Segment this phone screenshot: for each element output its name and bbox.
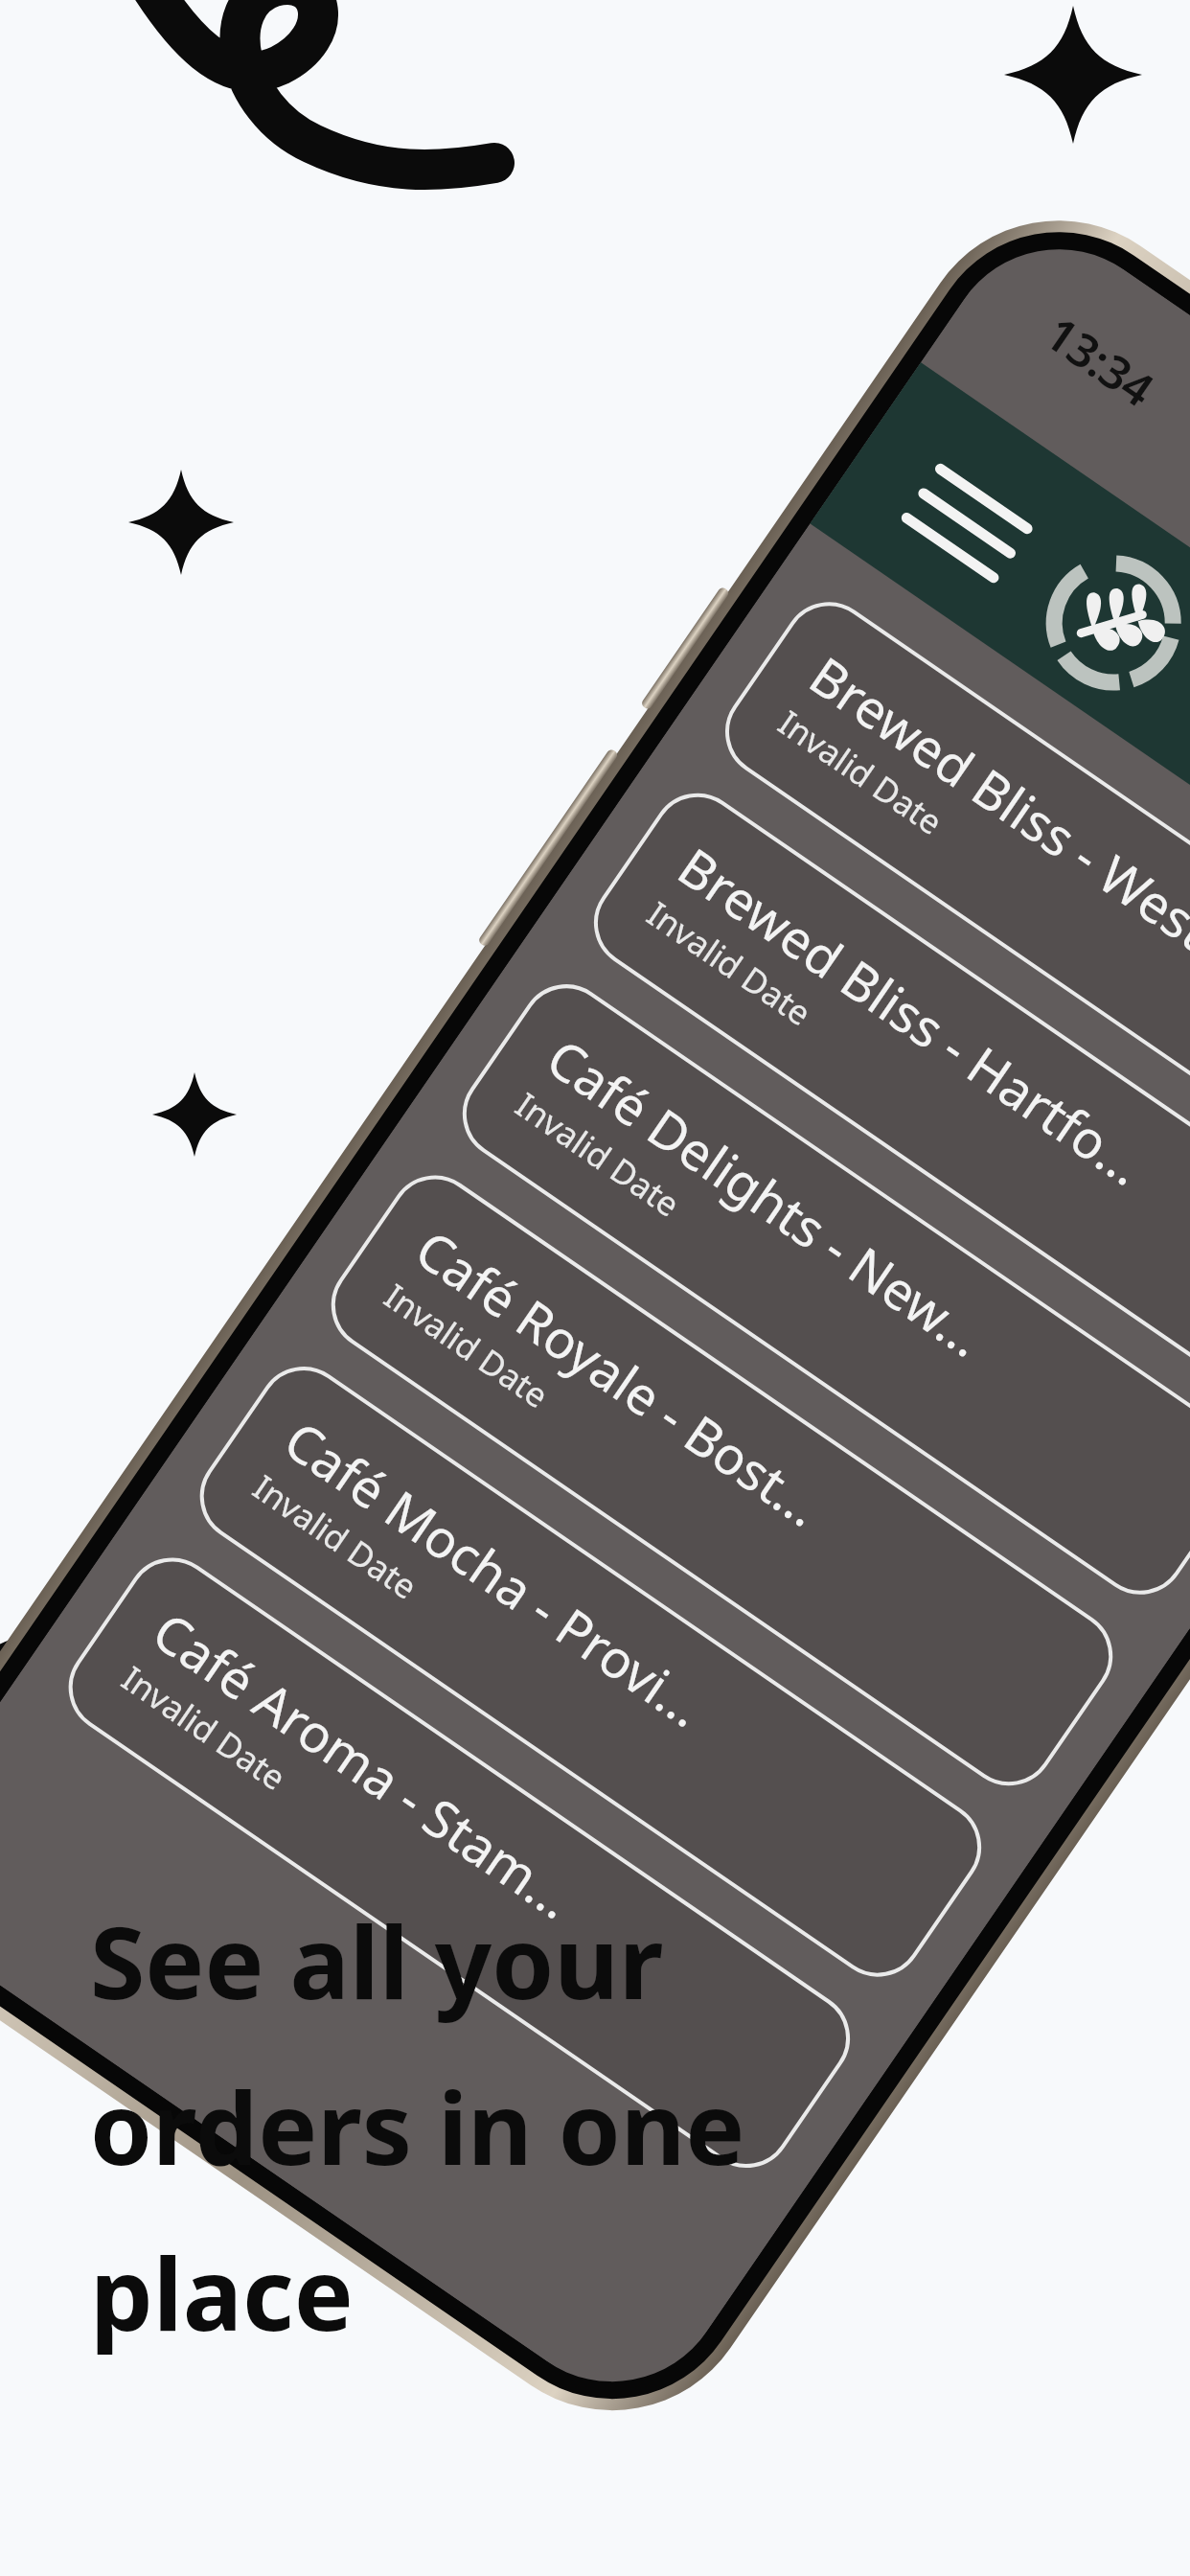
button[interactable]: See all your orders in one place bbox=[0, 0, 1190, 2576]
